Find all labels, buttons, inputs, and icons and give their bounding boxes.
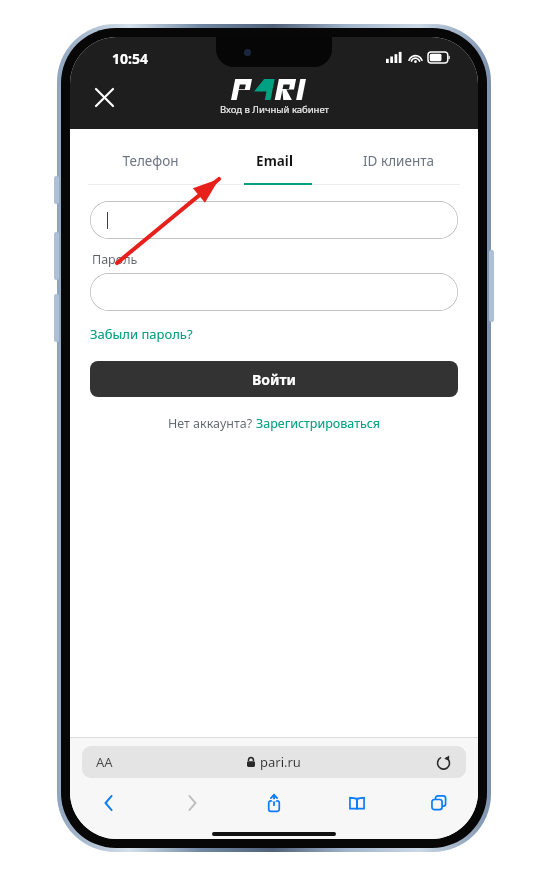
staticText: Вход в Личный кабинет (220, 103, 329, 116)
button[interactable]: Войти (90, 361, 458, 397)
staticText: Войти (252, 370, 296, 389)
button[interactable]: Обновить (432, 751, 454, 773)
staticText: Забыли пароль? (90, 325, 193, 343)
button[interactable] (90, 273, 458, 311)
button[interactable]: Забыли пароль? (90, 325, 193, 343)
button[interactable]: ID клиента (336, 143, 460, 179)
staticText: Телефон (122, 152, 179, 170)
staticText: ID клиента (363, 152, 434, 170)
button[interactable]: Зарегистрироваться (256, 415, 381, 432)
button[interactable]: Назад (86, 786, 132, 820)
staticText: Email (256, 152, 293, 170)
button[interactable]: Закладки (334, 786, 380, 820)
button[interactable]: Телефон (88, 143, 212, 179)
staticText: AA (96, 753, 113, 771)
button[interactable]: Email (212, 143, 336, 179)
staticText: 10:54 (112, 49, 148, 68)
button[interactable] (90, 201, 458, 239)
button[interactable]: Вперёд (169, 786, 215, 820)
button[interactable]: Поделиться (251, 786, 297, 820)
staticText: Зарегистрироваться (256, 415, 381, 432)
button[interactable]: AA (82, 746, 466, 778)
staticText: Пароль (92, 251, 138, 268)
button[interactable]: Закрыть (84, 77, 124, 117)
staticText: Нет аккаунта? (168, 415, 256, 432)
button[interactable]: Вкладки (416, 786, 462, 820)
staticText: pari.ru (260, 753, 301, 771)
